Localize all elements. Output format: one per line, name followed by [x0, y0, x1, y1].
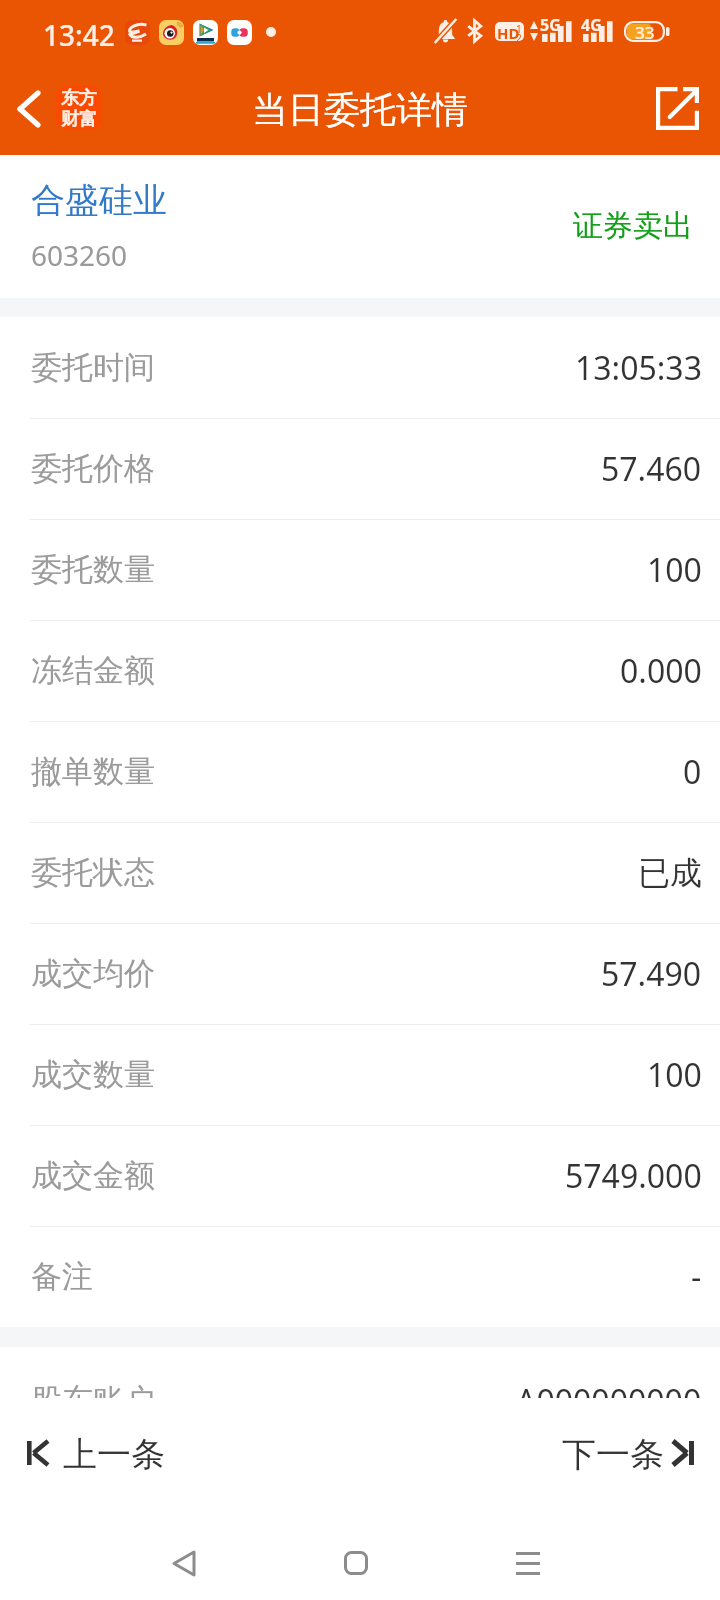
staticText: 财富 — [61, 108, 97, 130]
staticText: 57.460 — [601, 447, 702, 491]
button[interactable]: Back — [0, 62, 58, 155]
button[interactable]: Recent apps — [484, 1519, 572, 1600]
staticText: - — [691, 1255, 702, 1299]
staticText: 13:42 — [43, 16, 115, 54]
button[interactable]: 成交均价 — [0, 923, 720, 1024]
button[interactable]: 冻结金额 — [0, 620, 720, 721]
button[interactable]: 股东账户 — [0, 1350, 720, 1398]
button[interactable]: Home — [312, 1519, 400, 1600]
staticText: 100 — [647, 1053, 702, 1097]
button[interactable]: 委托价格 — [0, 418, 720, 519]
staticText: 撤单数量 — [31, 752, 155, 791]
staticText: 57.490 — [601, 952, 702, 996]
staticText: 成交均价 — [31, 954, 155, 993]
staticText: 合盛硅业 — [31, 179, 167, 222]
staticText: A000000000 — [516, 1379, 702, 1398]
button[interactable]: Share — [634, 62, 720, 155]
button[interactable]: 合盛硅业 — [0, 155, 720, 298]
staticText: 0 — [683, 750, 702, 794]
staticText: 4G — [581, 14, 602, 36]
staticText: 5G — [540, 14, 561, 36]
staticText: 当日委托详情 — [252, 87, 468, 132]
staticText: 成交数量 — [31, 1055, 155, 1094]
staticText: 证券卖出 — [573, 207, 693, 245]
staticText: 委托价格 — [31, 449, 155, 488]
button[interactable]: 上一条 — [0, 1399, 200, 1509]
staticText: 已成 — [638, 853, 702, 893]
button[interactable]: 撤单数量 — [0, 721, 720, 822]
staticText: 100 — [647, 548, 702, 592]
button[interactable]: 成交金额 — [0, 1125, 720, 1226]
button[interactable]: 委托数量 — [0, 519, 720, 620]
staticText: 委托数量 — [31, 550, 155, 589]
staticText: 委托状态 — [31, 853, 155, 892]
staticText: 1 — [516, 22, 522, 36]
staticText: 东方 — [61, 87, 97, 110]
staticText: 冻结金额 — [31, 651, 155, 690]
button[interactable]: 委托状态 — [0, 822, 720, 923]
staticText: 0.000 — [620, 649, 702, 693]
button[interactable]: 下一条 — [520, 1399, 720, 1509]
button[interactable]: Back — [140, 1519, 228, 1600]
staticText: 上一条 — [63, 1433, 165, 1476]
button[interactable]: East Money logo — [56, 86, 102, 130]
staticText: 备注 — [31, 1257, 93, 1296]
button[interactable]: 成交数量 — [0, 1024, 720, 1125]
staticText: 33 — [635, 21, 655, 42]
staticText: 13:05:33 — [575, 346, 702, 390]
staticText: HD — [497, 23, 520, 41]
staticText: 603260 — [31, 236, 128, 274]
staticText: 股东账户 — [31, 1381, 155, 1398]
button[interactable]: 委托时间 — [0, 317, 720, 418]
staticText: 2 — [516, 31, 522, 41]
staticText: 下一条 — [562, 1433, 664, 1476]
button[interactable]: 备注 — [0, 1226, 720, 1327]
staticText: 成交金额 — [31, 1156, 155, 1195]
staticText: 5749.000 — [565, 1154, 702, 1198]
staticText: 委托时间 — [31, 348, 155, 387]
